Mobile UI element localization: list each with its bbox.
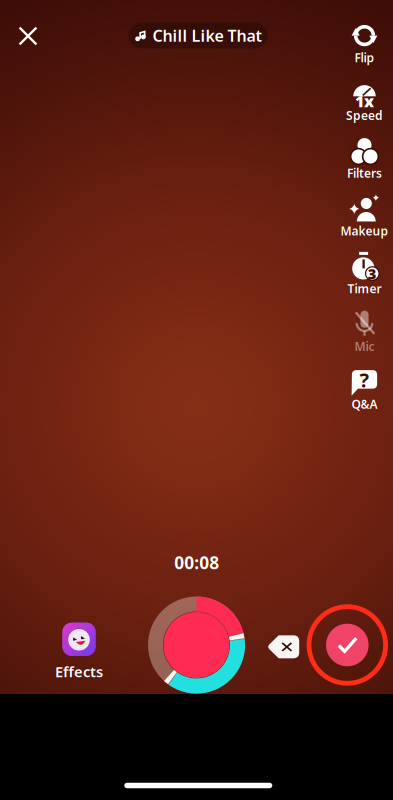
button[interactable]: 3	[336, 250, 392, 298]
button[interactable]: Done	[306, 604, 388, 686]
staticText: 3	[368, 264, 377, 283]
button[interactable]: Delete last clip	[261, 629, 305, 664]
staticText: 00:08	[174, 551, 219, 574]
staticText: Q&A	[351, 396, 377, 412]
button[interactable]: Mic	[336, 307, 392, 355]
button[interactable]: Effects	[42, 624, 116, 680]
staticText: Filters	[347, 165, 382, 181]
staticText: Makeup	[340, 223, 388, 239]
button[interactable]: ?	[336, 365, 392, 413]
staticText: 1x	[355, 90, 374, 112]
staticText: Mic	[354, 338, 374, 354]
button[interactable]: Makeup	[336, 192, 392, 240]
staticText: Timer	[347, 281, 381, 296]
staticText: Chill Like That	[152, 25, 261, 46]
button[interactable]: Flip	[336, 19, 392, 67]
staticText: Speed	[346, 107, 383, 123]
button[interactable]: Close	[6, 14, 50, 58]
button[interactable]: 1x	[336, 76, 392, 124]
button[interactable]: Filters	[336, 134, 392, 182]
staticText: Effects	[55, 662, 103, 681]
staticText: Flip	[354, 50, 374, 65]
button[interactable]: Chill Like That	[128, 22, 267, 48]
staticText: ?	[359, 366, 369, 393]
button[interactable]: Record	[147, 596, 245, 694]
